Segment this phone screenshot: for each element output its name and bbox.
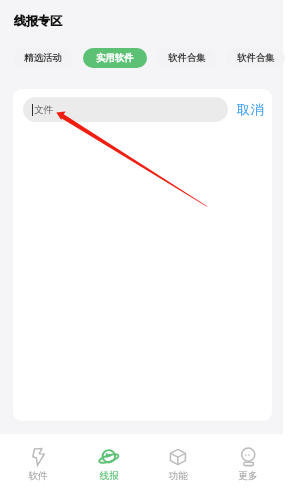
button[interactable]: 更多 [223,448,273,482]
button[interactable]: 软件合集 [156,48,217,68]
button[interactable]: 文件 [23,97,228,122]
staticText: 精选活动 [24,52,62,64]
button[interactable]: 软件合集 [226,48,285,68]
staticText: 取消 [237,101,264,118]
staticText: 线报专区 [14,13,62,28]
staticText: 更多 [238,470,258,482]
staticText: 实用软件 [96,52,134,64]
staticText: 文件 [34,104,54,116]
button[interactable]: 取消 [233,97,267,122]
staticText: 软件合集 [237,52,275,64]
staticText: 线报 [99,470,119,482]
button[interactable]: 精选活动 [13,48,73,68]
button[interactable]: 实用软件 [83,48,147,68]
button[interactable]: 功能 [153,448,203,482]
button[interactable]: 线报 [84,448,134,482]
staticText: 功能 [168,470,188,482]
staticText: 软件合集 [168,52,206,64]
button[interactable]: 软件 [13,448,63,482]
staticText: 软件 [28,470,48,482]
